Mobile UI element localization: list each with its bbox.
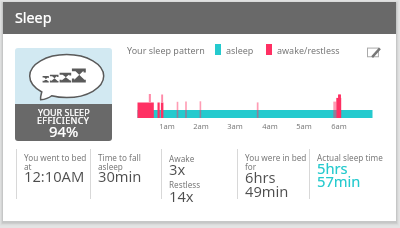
staticText: You went to bed bbox=[24, 152, 87, 163]
staticText: 1am bbox=[159, 121, 175, 131]
staticText: EFFICIENCY bbox=[37, 114, 90, 126]
staticText: 6am bbox=[331, 121, 347, 131]
staticText: at bbox=[24, 161, 32, 172]
staticText: 2am bbox=[193, 121, 209, 131]
staticText: asleep bbox=[98, 161, 123, 172]
staticText: Sleep bbox=[15, 8, 52, 27]
staticText: 5am bbox=[296, 121, 312, 131]
button[interactable]: You went to bed bbox=[16, 147, 90, 209]
staticText: 3am bbox=[227, 121, 243, 131]
staticText: You were in bed bbox=[245, 152, 307, 163]
staticText: Your sleep pattern bbox=[127, 44, 205, 56]
staticText: 94% bbox=[49, 121, 79, 141]
button[interactable]: Actual sleep time bbox=[309, 147, 389, 209]
button[interactable]: Awake bbox=[161, 147, 236, 209]
staticText: Awake bbox=[169, 153, 195, 164]
staticText: Time to fall bbox=[98, 152, 141, 163]
staticText: 30min bbox=[98, 166, 142, 186]
staticText: awake/restless bbox=[277, 44, 340, 56]
staticText: 6hrs bbox=[245, 167, 276, 187]
staticText: YOUR SLEEP bbox=[38, 106, 90, 118]
staticText: Restless bbox=[169, 179, 201, 190]
button[interactable]: You were in bed bbox=[237, 147, 309, 209]
button[interactable]: Edit bbox=[366, 44, 382, 60]
staticText: 4am bbox=[262, 121, 278, 131]
staticText: for bbox=[245, 161, 257, 172]
button[interactable]: Sleep bbox=[3, 2, 396, 34]
staticText: 14x bbox=[169, 186, 194, 206]
staticText: 5hrs bbox=[317, 158, 348, 178]
staticText: 57min bbox=[317, 171, 361, 191]
staticText: 49min bbox=[245, 181, 289, 201]
staticText: 12:10AM bbox=[24, 166, 85, 186]
button[interactable]: Time to fall bbox=[90, 147, 161, 209]
staticText: 3x bbox=[169, 159, 186, 179]
staticText: Actual sleep time bbox=[317, 152, 383, 163]
button[interactable]: YOUR SLEEP bbox=[15, 48, 112, 141]
staticText: asleep bbox=[226, 44, 254, 56]
